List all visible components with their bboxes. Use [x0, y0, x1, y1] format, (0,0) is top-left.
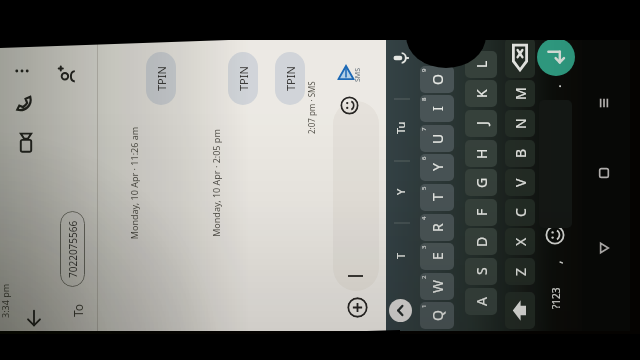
button[interactable]: Y	[420, 154, 454, 181]
button[interactable]: Call	[11, 91, 37, 117]
staticText: 2	[420, 275, 428, 279]
staticText: To	[70, 303, 86, 317]
staticText: N	[511, 118, 530, 129]
staticText: F	[472, 208, 491, 216]
staticText: K	[472, 89, 491, 98]
button[interactable]: Voice input	[390, 47, 412, 69]
staticText: Z	[511, 267, 530, 276]
staticText: M	[511, 87, 530, 100]
button[interactable]: O	[420, 66, 454, 93]
button[interactable]: G	[465, 169, 497, 196]
staticText: X	[511, 237, 530, 246]
staticText: 1	[420, 304, 428, 308]
button[interactable]: ?123	[541, 279, 571, 317]
button[interactable]: K	[465, 80, 497, 107]
button[interactable]: E	[420, 243, 454, 270]
button[interactable]: Add person	[54, 62, 80, 88]
button[interactable]: TPIN	[275, 52, 305, 105]
staticText: C	[511, 208, 530, 217]
button[interactable]: U	[420, 125, 454, 152]
staticText: Y	[393, 188, 408, 195]
staticText: .	[547, 84, 565, 88]
staticText: W	[428, 279, 447, 293]
staticText: S	[472, 267, 491, 275]
staticText: R	[428, 223, 447, 232]
staticText: J	[472, 121, 491, 125]
button[interactable]: .	[541, 77, 571, 95]
button[interactable]: Attach	[347, 297, 368, 318]
staticText: V	[511, 178, 530, 187]
button[interactable]: More options	[9, 58, 35, 84]
button[interactable]: 7022075566	[60, 211, 85, 287]
button[interactable]: TPIN	[146, 52, 176, 105]
button[interactable]: Video call	[13, 130, 39, 156]
staticText: B	[511, 148, 530, 158]
button[interactable]: M	[505, 80, 535, 107]
staticText: Y	[428, 163, 447, 171]
button[interactable]: R	[420, 214, 454, 241]
button[interactable]: Enter	[537, 38, 575, 76]
staticText: I	[428, 106, 447, 111]
button[interactable]: D	[465, 228, 497, 255]
button[interactable]: C	[505, 199, 535, 226]
staticText: TPIN	[154, 66, 169, 91]
button[interactable]: B	[505, 140, 535, 167]
button[interactable]: ,	[541, 251, 571, 273]
button[interactable]: A	[465, 288, 497, 315]
button[interactable]: N	[505, 110, 535, 137]
button[interactable]: Q	[420, 302, 454, 329]
staticText: 3	[420, 245, 428, 249]
button[interactable]: J	[465, 110, 497, 137]
staticText: Q	[428, 310, 447, 321]
staticText: 7	[420, 127, 428, 131]
staticText: E	[428, 252, 447, 260]
staticText: Monday, 10 Apr · 11:26 am	[128, 35, 140, 331]
button[interactable]: S	[465, 258, 497, 285]
staticText: 4	[420, 216, 428, 220]
staticText: 6	[420, 156, 428, 160]
button[interactable]: TPIN	[228, 52, 258, 105]
button[interactable]	[333, 101, 379, 291]
button[interactable]: I	[420, 95, 454, 122]
staticText: H	[472, 148, 491, 159]
staticText: 2:07 pm · SMS	[306, 81, 317, 134]
button[interactable]: Expand toolbar	[389, 299, 412, 322]
staticText: D	[472, 236, 491, 247]
button[interactable]: Emoji	[340, 96, 359, 115]
button[interactable]: Send SMS	[335, 62, 357, 84]
staticText: ?123	[549, 287, 563, 309]
staticText: 8	[420, 97, 428, 101]
button[interactable]: Back	[21, 305, 47, 331]
button[interactable]: L	[465, 51, 497, 78]
staticText: ,	[547, 260, 565, 264]
staticText: T	[393, 252, 408, 259]
staticText: U	[428, 133, 447, 144]
button[interactable]: Recent apps	[592, 91, 616, 115]
button[interactable]: Shift	[505, 292, 535, 329]
button[interactable]: Emoji keyboard	[545, 225, 565, 245]
staticText: 5	[420, 186, 428, 190]
staticText: Monday, 10 Apr · 2:05 pm	[210, 35, 222, 331]
button[interactable]: F	[465, 199, 497, 226]
staticText: G	[472, 177, 491, 188]
staticText: 3:34 pm	[0, 283, 11, 318]
staticText: SMS	[353, 67, 363, 82]
button[interactable]: H	[465, 140, 497, 167]
staticText: 9	[420, 68, 428, 72]
button[interactable]: Z	[505, 258, 535, 285]
button[interactable]: X	[505, 228, 535, 255]
staticText: O	[428, 74, 447, 85]
staticText: Tu	[393, 121, 408, 134]
staticText: TPIN	[283, 66, 298, 91]
button[interactable]: T	[420, 184, 454, 211]
staticText: 7022075566	[66, 220, 80, 278]
button[interactable]: Backspace	[505, 38, 535, 78]
button[interactable]: P	[420, 36, 454, 63]
button[interactable]: Home	[592, 161, 616, 185]
button[interactable]: V	[505, 169, 535, 196]
staticText: A	[472, 297, 491, 306]
button[interactable]: W	[420, 273, 454, 300]
button[interactable]: Back	[592, 236, 616, 260]
